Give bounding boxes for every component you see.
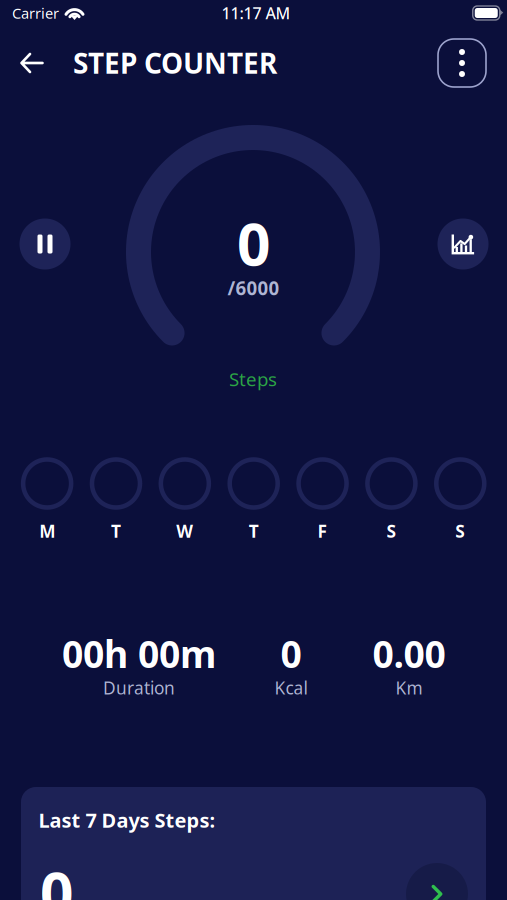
button[interactable]: F (288, 459, 357, 542)
staticText: /6000 (227, 276, 279, 300)
button[interactable]: S (426, 459, 495, 542)
staticText: Km (395, 676, 422, 699)
staticText: 0 (280, 629, 301, 678)
staticText: S (455, 519, 465, 542)
button[interactable]: Pause (19, 218, 70, 269)
button[interactable]: Last 7 Days Steps: (21, 787, 486, 900)
staticText: W (176, 519, 193, 542)
staticText: Duration (103, 676, 175, 699)
staticText: F (318, 519, 328, 542)
staticText: T (249, 519, 259, 542)
button[interactable]: Statistics (437, 218, 488, 269)
staticText: T (111, 519, 121, 542)
staticText: S (386, 519, 396, 542)
button[interactable]: T (219, 459, 288, 542)
button[interactable]: W (150, 459, 219, 542)
staticText: 11:17 AM (221, 2, 290, 24)
button[interactable]: S (357, 459, 426, 542)
staticText: Kcal (274, 676, 307, 699)
staticText: 0 (40, 853, 74, 900)
staticText: 0.00 (372, 629, 445, 678)
staticText: STEP COUNTER (73, 44, 277, 82)
staticText: 0 (237, 204, 271, 282)
staticText: M (39, 519, 55, 542)
button[interactable]: Back (4, 36, 60, 90)
staticText: 00h 00m (62, 629, 216, 678)
button[interactable]: M (13, 459, 82, 542)
button[interactable]: More options (438, 39, 486, 87)
staticText: Carrier (12, 3, 59, 23)
button[interactable]: T (82, 459, 150, 542)
staticText: Last 7 Days Steps: (38, 807, 215, 833)
staticText: Steps (229, 367, 277, 391)
